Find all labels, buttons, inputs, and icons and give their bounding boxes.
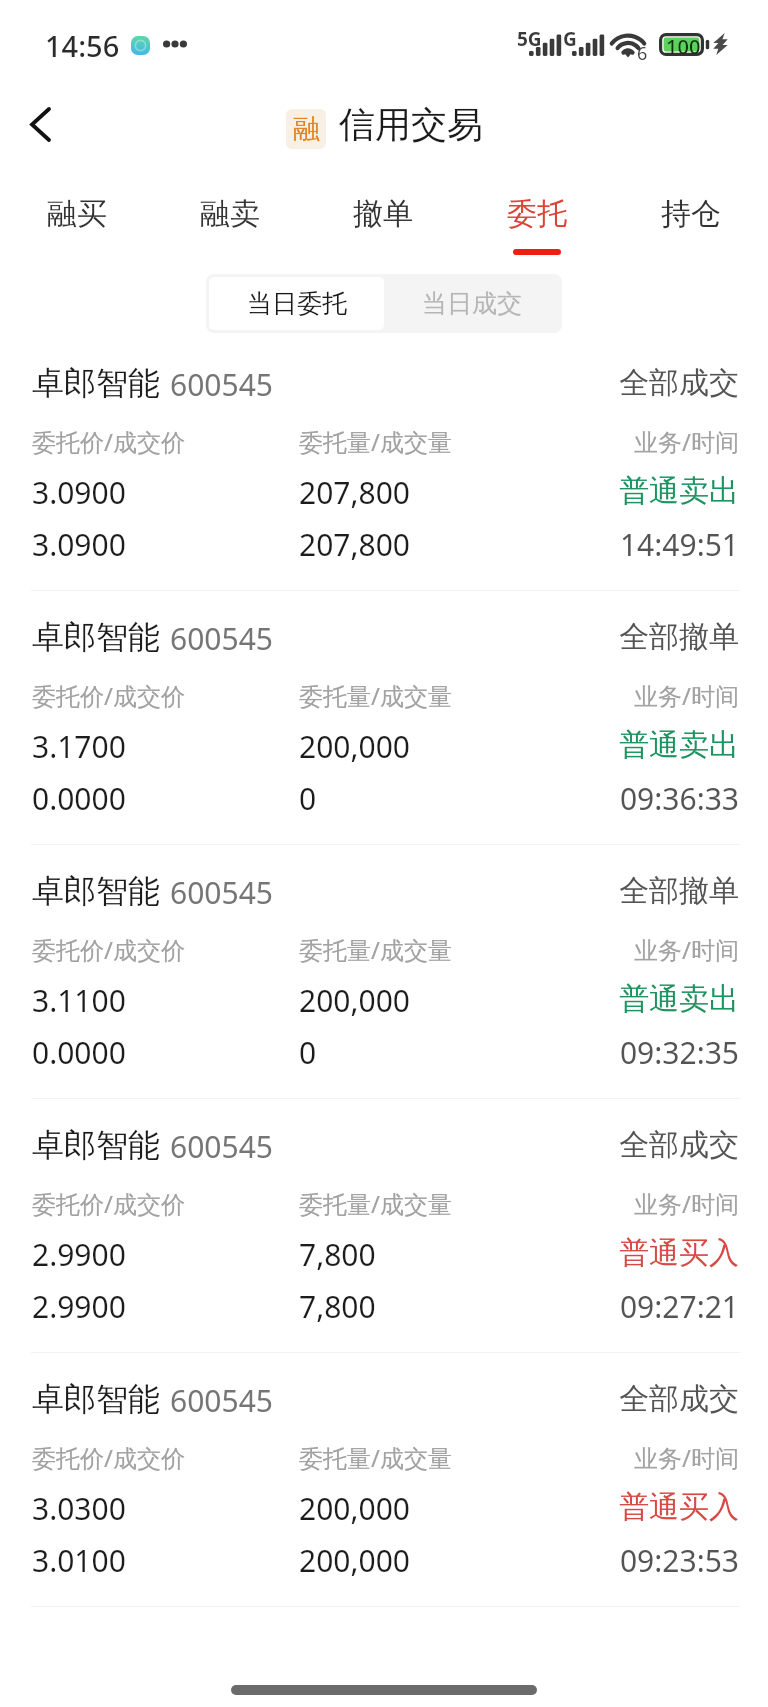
staticText: 5G	[517, 26, 542, 52]
staticText: 撤单	[353, 195, 413, 233]
staticText: 卓郎智能	[32, 1125, 160, 1165]
staticText: 委托价/成交价	[32, 1187, 185, 1220]
staticText: 委托价/成交价	[32, 933, 185, 966]
staticText: 600545	[170, 1380, 273, 1421]
staticText: 09:23:53	[619, 1540, 739, 1581]
staticText: 全部撤单	[619, 618, 739, 656]
staticText: 600545	[170, 364, 273, 405]
staticText: 6	[637, 41, 648, 66]
staticText: 200,000	[299, 1540, 410, 1581]
staticText: 14:49:51	[619, 524, 739, 565]
staticText: 7,800	[299, 1234, 376, 1275]
staticText: 委托价/成交价	[32, 1441, 185, 1474]
staticText: 0	[299, 778, 317, 819]
staticText: 全部成交	[619, 364, 739, 402]
staticText: 当日成交	[422, 288, 522, 319]
button[interactable]: 撤单	[306, 174, 460, 264]
staticText: 普通买入	[619, 1488, 739, 1526]
staticText: 业务/时间	[634, 1441, 739, 1474]
staticText: 200,000	[299, 726, 410, 767]
staticText: 融	[293, 112, 320, 146]
staticText: 09:36:33	[619, 778, 739, 819]
button[interactable]: 卓郎智能	[0, 1356, 768, 1610]
button[interactable]: 卓郎智能	[0, 1102, 768, 1356]
staticText: 3.1700	[32, 726, 126, 767]
staticText: 7,800	[299, 1286, 376, 1327]
staticText: 卓郎智能	[32, 871, 160, 911]
staticText: 委托价/成交价	[32, 425, 185, 458]
staticText: 普通买入	[619, 1234, 739, 1272]
staticText: 业务/时间	[634, 679, 739, 712]
staticText: 200,000	[299, 1488, 410, 1529]
staticText: 委托量/成交量	[299, 1187, 452, 1220]
staticText: 委托价/成交价	[32, 679, 185, 712]
button[interactable]: Back	[8, 92, 72, 156]
button[interactable]: 持仓	[614, 174, 768, 264]
button[interactable]: 卓郎智能	[0, 340, 768, 594]
staticText: 207,800	[299, 524, 410, 565]
staticText: G	[563, 26, 577, 52]
staticText: 全部成交	[619, 1126, 739, 1164]
staticText: 卓郎智能	[32, 1379, 160, 1419]
button[interactable]: 当日委托	[209, 277, 384, 330]
staticText: 3.1100	[32, 980, 126, 1021]
staticText: 融卖	[200, 195, 260, 233]
button[interactable]: 融卖	[153, 174, 306, 264]
staticText: 卓郎智能	[32, 617, 160, 657]
staticText: 09:27:21	[619, 1286, 739, 1327]
staticText: 3.0900	[32, 524, 126, 565]
staticText: 持仓	[661, 195, 721, 233]
staticText: 委托量/成交量	[299, 933, 452, 966]
staticText: 业务/时间	[634, 933, 739, 966]
staticText: 业务/时间	[634, 1187, 739, 1220]
staticText: 2.9900	[32, 1234, 126, 1275]
staticText: 600545	[170, 1126, 273, 1167]
staticText: 信用交易	[339, 102, 483, 147]
staticText: 600545	[170, 618, 273, 659]
staticText: 3.0900	[32, 472, 126, 513]
staticText: 全部成交	[619, 1380, 739, 1418]
staticText: 100	[666, 33, 701, 60]
staticText: 09:32:35	[619, 1032, 739, 1073]
staticText: 200,000	[299, 980, 410, 1021]
staticText: 0	[299, 1032, 317, 1073]
staticText: 普通卖出	[619, 726, 739, 764]
button[interactable]: 卓郎智能	[0, 594, 768, 848]
staticText: 委托量/成交量	[299, 679, 452, 712]
staticText: 委托量/成交量	[299, 425, 452, 458]
staticText: 全部撤单	[619, 872, 739, 910]
button[interactable]: 当日成交	[384, 277, 559, 330]
staticText: 融买	[47, 195, 107, 233]
staticText: 普通卖出	[619, 980, 739, 1018]
staticText: 3.0300	[32, 1488, 126, 1529]
button[interactable]: 融买	[0, 174, 153, 264]
button[interactable]: 卓郎智能	[0, 848, 768, 1102]
staticText: 207,800	[299, 472, 410, 513]
button[interactable]: 委托	[460, 174, 614, 264]
staticText: 当日委托	[247, 288, 347, 319]
staticText: 0.0000	[32, 1032, 126, 1073]
staticText: 业务/时间	[634, 425, 739, 458]
staticText: 14:56	[45, 26, 120, 65]
staticText: 600545	[170, 872, 273, 913]
staticText: 0.0000	[32, 778, 126, 819]
staticText: 卓郎智能	[32, 363, 160, 403]
staticText: 委托	[507, 195, 567, 233]
staticText: 普通卖出	[619, 472, 739, 510]
staticText: 2.9900	[32, 1286, 126, 1327]
staticText: 3.0100	[32, 1540, 126, 1581]
staticText: 委托量/成交量	[299, 1441, 452, 1474]
